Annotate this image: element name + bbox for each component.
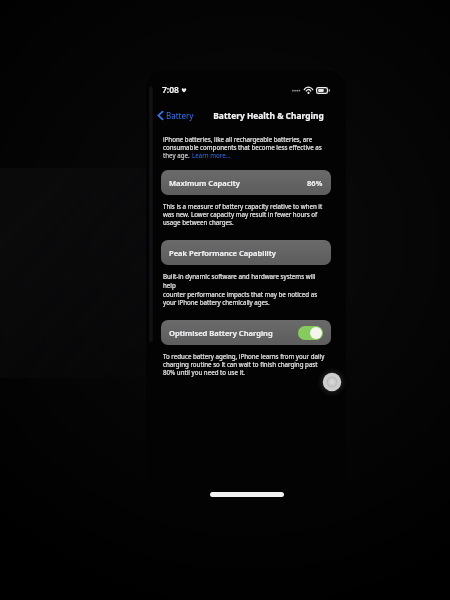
staticText: Optimised Battery Charging xyxy=(169,328,273,338)
button[interactable]: Back to Battery xyxy=(155,108,197,123)
staticText: charging routine so it can wait to finis… xyxy=(163,360,318,368)
button[interactable]: AssistiveTouch xyxy=(318,368,346,396)
button[interactable]: Maximum Capacity xyxy=(161,170,331,195)
staticText: Peak Performance Capability xyxy=(169,248,276,258)
staticText: Battery xyxy=(166,110,194,121)
staticText: Built-in dynamic software and hardware s… xyxy=(163,272,329,290)
staticText: counter performance impacts that may be … xyxy=(163,290,318,298)
staticText: Learn more... xyxy=(192,151,231,159)
staticText: was new. Lower capacity may result in fe… xyxy=(163,210,318,218)
button[interactable]: Optimised Battery Charging toggle, on xyxy=(298,326,323,340)
staticText: your iPhone battery chemically ages. xyxy=(163,298,270,306)
staticText: usage between charges. xyxy=(163,218,234,226)
staticText: This is a measure of battery capacity re… xyxy=(163,202,323,210)
staticText: iPhone batteries, like all rechargeable … xyxy=(163,135,313,143)
button[interactable]: Learn more... xyxy=(192,151,231,159)
staticText: consumable components that become less e… xyxy=(163,143,322,151)
staticText: they age. xyxy=(163,151,192,159)
staticText: Maximum Capacity xyxy=(169,178,240,188)
staticText: Battery Health & Charging xyxy=(213,110,324,121)
button[interactable]: Peak Performance Capability xyxy=(161,240,331,265)
button[interactable]: Optimised Battery Charging xyxy=(161,320,331,345)
staticText: To reduce battery ageing, iPhone learns … xyxy=(163,352,325,360)
staticText: 80% until you need to use it. xyxy=(163,368,246,376)
staticText: 7:08 xyxy=(162,84,179,96)
staticText: 86% xyxy=(307,178,323,188)
